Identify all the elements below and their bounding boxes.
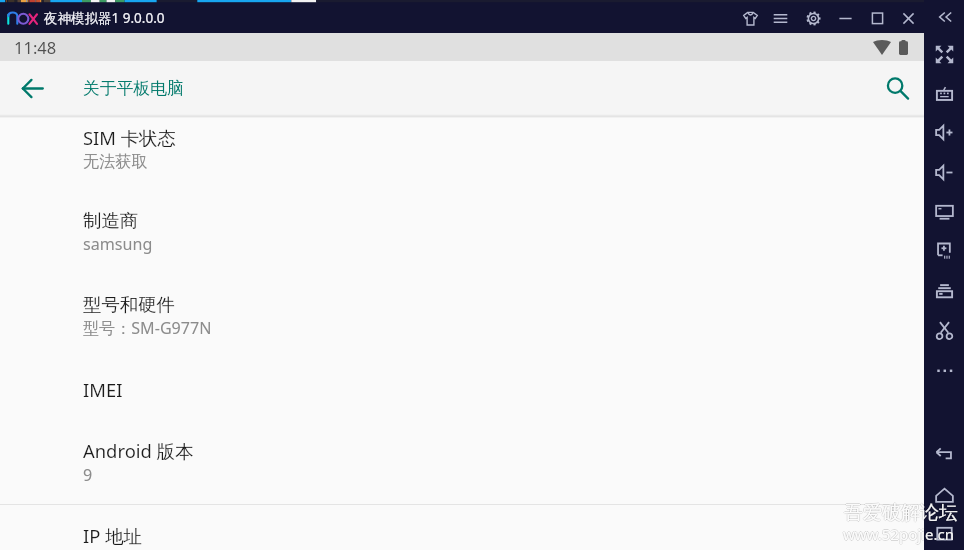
- staticText: www.52pojie.cn: [843, 525, 954, 545]
- button[interactable]: Recents: [924, 515, 964, 550]
- button[interactable]: 制造商: [0, 190, 924, 274]
- staticText: 吾爱破解论坛: [844, 501, 958, 525]
- staticText: www.52pojie.cn: [844, 524, 955, 544]
- staticText: 9: [83, 464, 93, 486]
- button[interactable]: Home: [924, 477, 964, 513]
- staticText: 型号：SM-G977N: [83, 317, 212, 339]
- staticText: Android 版本: [83, 438, 194, 463]
- staticText: 吾爱破解论坛: [844, 502, 958, 526]
- button[interactable]: Install APK: [924, 233, 964, 269]
- staticText: 关于平板电脑: [83, 78, 184, 99]
- staticText: 吾爱破解论坛: [844, 500, 958, 524]
- staticText: samsung: [83, 233, 153, 255]
- staticText: 吾爱破解论坛: [845, 501, 959, 525]
- button[interactable]: Android 版本: [0, 425, 924, 499]
- button[interactable]: Settings: [798, 3, 828, 33]
- button[interactable]: Collapse: [924, 0, 964, 35]
- staticText: www.52pojie.cn: [842, 524, 953, 544]
- staticText: IMEI: [83, 377, 123, 402]
- button[interactable]: Screenshot: [924, 193, 964, 229]
- button[interactable]: Shared folder: [924, 271, 964, 307]
- button[interactable]: IP 地址: [0, 504, 924, 550]
- button[interactable]: Keyboard: [924, 75, 964, 111]
- button[interactable]: Volume up: [924, 114, 964, 150]
- staticText: 吾爱破解论坛: [843, 501, 957, 525]
- staticText: 型号和硬件: [83, 293, 175, 316]
- button[interactable]: Volume down: [924, 154, 964, 190]
- staticText: 无法获取: [83, 151, 148, 171]
- button[interactable]: Back: [924, 436, 964, 472]
- button[interactable]: More: [924, 352, 964, 388]
- button[interactable]: SIM 卡状态: [0, 106, 924, 190]
- button[interactable]: Maximize: [862, 3, 892, 33]
- button[interactable]: Menu: [765, 3, 795, 33]
- button[interactable]: Cut: [924, 312, 964, 348]
- button[interactable]: Close: [893, 3, 923, 33]
- staticText: SIM 卡状态: [83, 125, 176, 150]
- staticText: www.52pojie.cn: [843, 523, 954, 543]
- staticText: 夜神模拟器1 9.0.0.0: [44, 9, 165, 27]
- staticText: www.52pojie.cn: [843, 524, 954, 544]
- staticText: IP 地址: [83, 523, 142, 548]
- button[interactable]: 型号和硬件: [0, 274, 924, 358]
- button[interactable]: Fullscreen: [924, 36, 964, 72]
- staticText: 11:48: [14, 36, 57, 58]
- button[interactable]: Search: [876, 61, 920, 116]
- button[interactable]: IMEI: [0, 358, 924, 420]
- staticText: 制造商: [83, 209, 139, 232]
- button[interactable]: Theme: [735, 3, 765, 33]
- button[interactable]: Minimize: [830, 3, 860, 33]
- button[interactable]: Back: [8, 61, 56, 116]
